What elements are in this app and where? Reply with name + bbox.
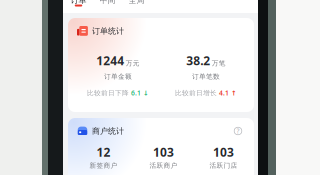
staticText: 6.1 ↓ (131, 89, 149, 97)
staticText: 比较前日下降 (87, 89, 131, 97)
staticText: 订单统计 (92, 26, 124, 36)
button[interactable]: 订单统计 (68, 18, 254, 112)
staticText: 4.1 ↑ (219, 89, 237, 97)
staticText: 比较前日增长 (175, 89, 219, 97)
staticText: 全局 (128, 0, 144, 5)
button[interactable]: 商户统计 (68, 118, 254, 175)
staticText: 订单 (70, 0, 86, 5)
staticText: 1244 (96, 52, 124, 68)
staticText: 38.2 (186, 52, 210, 68)
button[interactable]: 全局 (122, 0, 151, 13)
staticText: 商户统计 (92, 126, 124, 136)
staticText: 103 (213, 144, 234, 160)
staticText: 活跃门店 (209, 161, 237, 170)
staticText: 订单笔数 (192, 72, 220, 81)
button[interactable]: 帮助 (233, 126, 243, 136)
staticText: ? (236, 127, 239, 135)
staticText: 万元 (126, 59, 140, 67)
staticText: 新签商户 (89, 161, 117, 170)
button[interactable]: 中间 (93, 0, 122, 13)
staticText: 订单金额 (104, 72, 132, 81)
staticText: 活跃商户 (149, 161, 177, 170)
staticText: 12 (96, 144, 110, 160)
staticText: 中间 (99, 0, 115, 5)
staticText: 103 (153, 144, 174, 160)
staticText: 万笔 (212, 59, 226, 67)
button[interactable]: 订单 (64, 0, 93, 13)
